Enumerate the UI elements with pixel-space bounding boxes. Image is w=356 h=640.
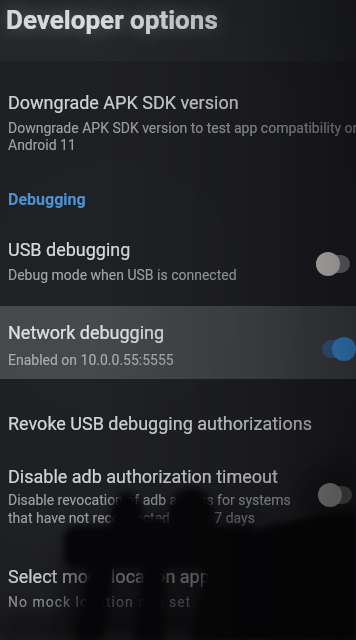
staticText: Select mock location app xyxy=(8,566,210,587)
staticText: No mock location app set xyxy=(8,594,192,610)
staticText: Downgrade APK SDK version to test app co… xyxy=(8,120,356,136)
staticText: USB debugging xyxy=(8,239,131,260)
staticText: Debug mode when USB is connected xyxy=(8,267,237,283)
staticText: that have not reconnected within 7 days xyxy=(8,510,255,526)
staticText: Disable revocation of adb access for sys… xyxy=(8,492,291,508)
staticText: Downgrade APK SDK version xyxy=(8,92,239,113)
staticText: Revoke USB debugging authorizations xyxy=(8,413,312,434)
staticText: Android 11 xyxy=(8,137,76,153)
staticText: Network debugging xyxy=(8,322,165,343)
staticText: Disable adb authorization timeout xyxy=(8,466,278,487)
staticText: Enabled on 10.0.0.55:5555 xyxy=(8,352,174,368)
staticText: Debugging xyxy=(8,190,86,209)
staticText: Developer options xyxy=(6,5,218,35)
